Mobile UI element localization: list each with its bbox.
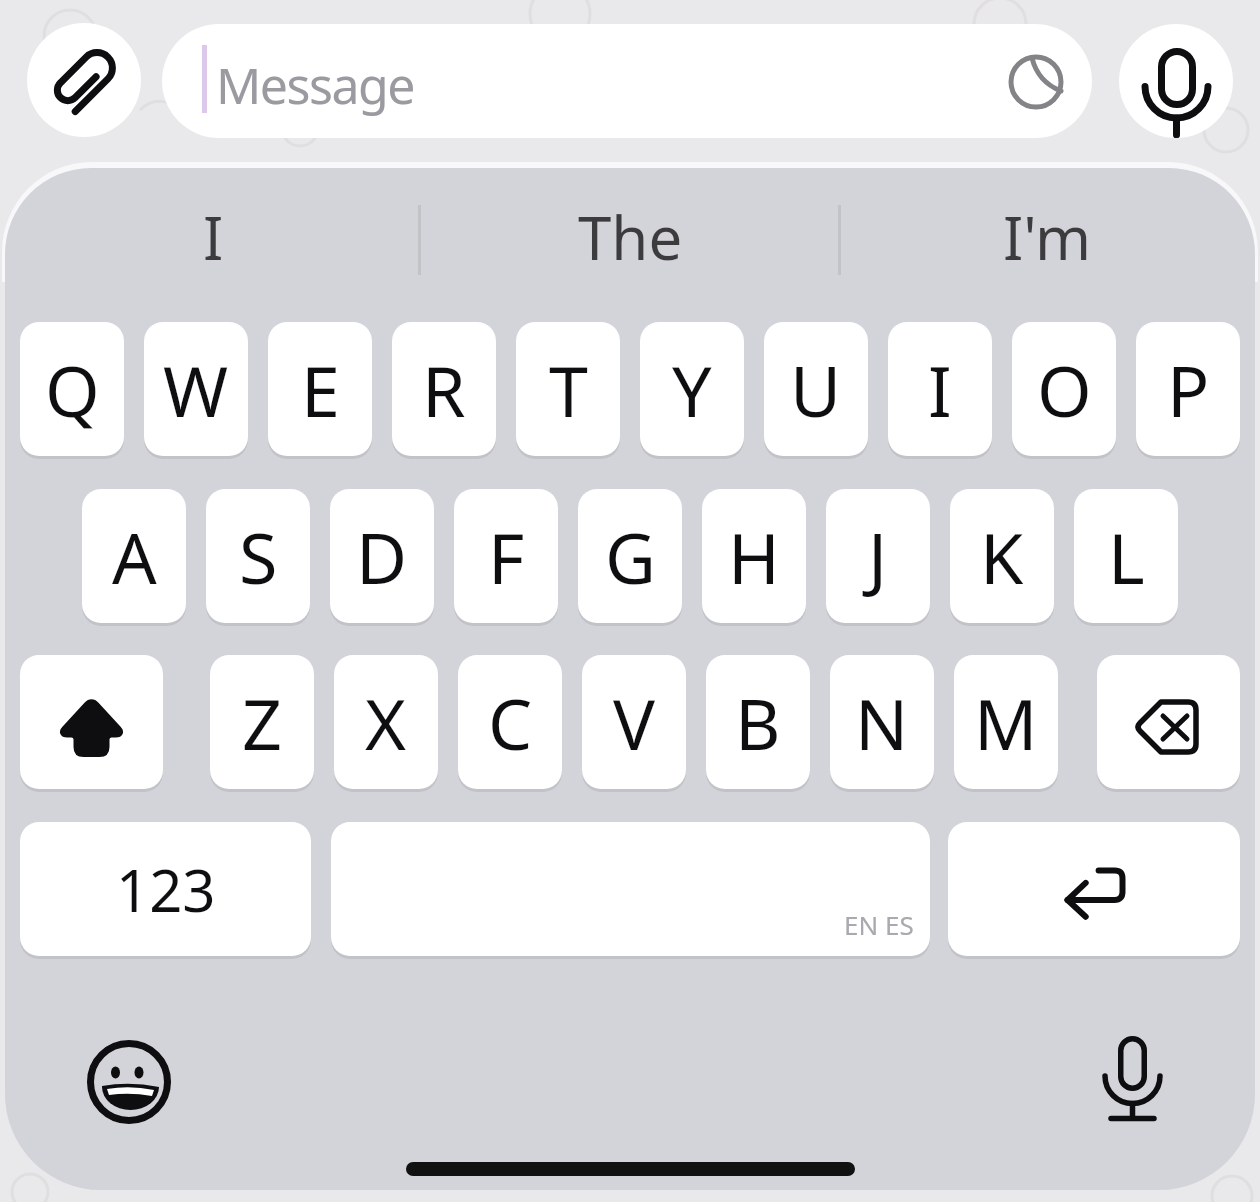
staticText: K [980, 509, 1024, 604]
staticText: Z [242, 675, 283, 770]
staticText: J [868, 509, 888, 604]
button[interactable]: D [330, 489, 434, 623]
button[interactable] [27, 23, 141, 137]
staticText: Y [672, 342, 712, 437]
button[interactable]: 123 [20, 822, 311, 956]
staticText: Message [216, 51, 414, 119]
button[interactable]: W [144, 322, 248, 456]
button[interactable]: N [830, 655, 934, 789]
button[interactable]: A [82, 489, 186, 623]
staticText: O [1037, 342, 1092, 437]
button[interactable]: X [334, 655, 438, 789]
staticText: A [112, 509, 157, 604]
button[interactable]: I'm [867, 190, 1227, 284]
button[interactable]: R [392, 322, 496, 456]
staticText: X [365, 675, 407, 770]
staticText: I [203, 196, 224, 278]
staticText: P [1167, 342, 1210, 437]
button[interactable]: The [450, 190, 810, 284]
button[interactable]: K [950, 489, 1054, 623]
button[interactable]: C [458, 655, 562, 789]
button[interactable]: Y [640, 322, 744, 456]
button[interactable]: O [1012, 322, 1116, 456]
staticText: L [1108, 509, 1145, 604]
button[interactable]: V [582, 655, 686, 789]
button[interactable]: T [516, 322, 620, 456]
staticText: S [239, 509, 278, 604]
staticText: D [356, 509, 408, 604]
staticText: T [549, 342, 588, 437]
button[interactable] [948, 822, 1240, 956]
button[interactable]: H [702, 489, 806, 623]
button[interactable]: I [888, 322, 992, 456]
staticText: G [605, 509, 656, 604]
button[interactable] [87, 1040, 171, 1124]
staticText: C [488, 675, 533, 770]
button[interactable]: Z [210, 655, 314, 789]
staticText: V [613, 675, 655, 770]
staticText: H [728, 509, 780, 604]
button[interactable] [1097, 655, 1240, 789]
button[interactable]: Message [162, 24, 1092, 138]
button[interactable] [1119, 24, 1233, 138]
staticText: The [578, 196, 683, 278]
button[interactable]: P [1136, 322, 1240, 456]
button[interactable]: EN ES [331, 822, 930, 956]
staticText: B [735, 675, 781, 770]
staticText: I [928, 342, 952, 437]
staticText: W [163, 342, 229, 437]
staticText: F [488, 509, 525, 604]
button[interactable]: B [706, 655, 810, 789]
button[interactable]: Q [20, 322, 124, 456]
button[interactable]: U [764, 322, 868, 456]
button[interactable] [1092, 1026, 1176, 1110]
button[interactable]: S [206, 489, 310, 623]
button[interactable]: J [826, 489, 930, 623]
staticText: Q [45, 342, 100, 437]
button[interactable]: G [578, 489, 682, 623]
button[interactable]: I [33, 190, 393, 284]
button[interactable]: F [454, 489, 558, 623]
staticText: M [974, 675, 1038, 770]
staticText: E [301, 342, 340, 437]
button[interactable] [20, 655, 163, 789]
staticText: EN ES [844, 907, 914, 942]
staticText: U [790, 342, 842, 437]
staticText: N [855, 675, 909, 770]
staticText: 123 [116, 850, 216, 929]
button[interactable]: E [268, 322, 372, 456]
button[interactable]: L [1074, 489, 1178, 623]
staticText: I'm [1003, 196, 1092, 278]
button[interactable]: M [954, 655, 1058, 789]
staticText: R [422, 342, 466, 437]
